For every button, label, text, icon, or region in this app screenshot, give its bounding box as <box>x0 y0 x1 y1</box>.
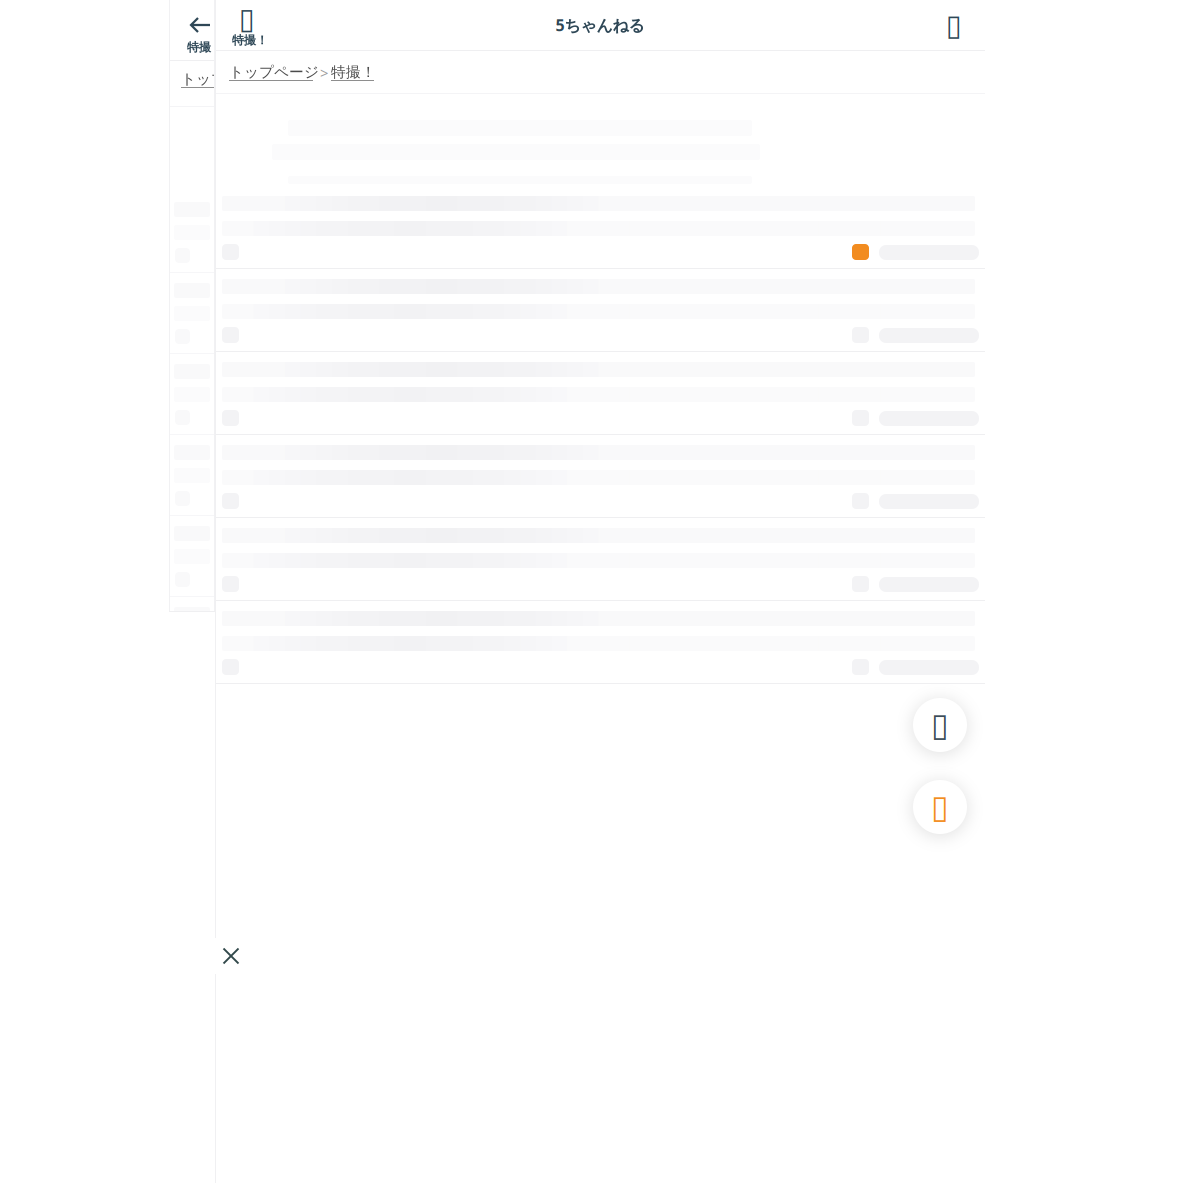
staticText: > <box>320 63 328 82</box>
button[interactable]: Scroll to top <box>913 698 967 752</box>
button[interactable] <box>215 435 985 517</box>
button[interactable] <box>215 352 985 434</box>
button[interactable]: Menu <box>923 0 985 50</box>
staticText: ▯ <box>239 2 255 35</box>
button[interactable]: Board 特撮！ <box>215 0 291 50</box>
staticText: 特撮 <box>187 40 211 55</box>
staticText: 特撮！ <box>331 63 376 81</box>
button[interactable]: トップページ <box>229 61 313 85</box>
staticText: ▯ <box>931 789 949 825</box>
button[interactable] <box>215 601 985 683</box>
button[interactable] <box>215 269 985 351</box>
button[interactable]: Close <box>213 938 249 974</box>
staticText: ▯ <box>946 8 962 42</box>
staticText: トップページ <box>181 70 271 88</box>
button[interactable] <box>215 186 985 268</box>
button[interactable]: 特撮！ <box>331 61 374 85</box>
button[interactable]: New thread <box>913 780 967 834</box>
staticText: 特撮！ <box>232 33 268 48</box>
staticText: 5ちゃんねる <box>555 14 644 36</box>
staticText: トップページ <box>229 63 319 81</box>
staticText: ▯ <box>931 707 949 743</box>
button[interactable] <box>215 518 985 600</box>
